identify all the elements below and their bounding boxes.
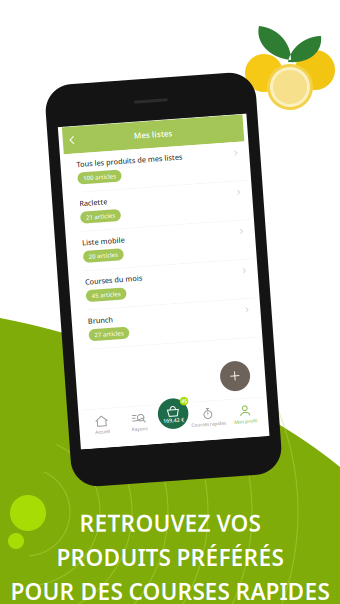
button[interactable]: Nouvelle liste (262, 450, 322, 510)
staticText: Courses du mois (6, 261, 121, 281)
staticText: 20 articles (17, 213, 76, 229)
button[interactable]: Raclette (0, 92, 340, 170)
button[interactable]: Courses du mois (0, 249, 340, 327)
button[interactable]: Brunch (0, 328, 340, 405)
staticText: 27 articles (17, 370, 76, 386)
staticText: Mon profil (284, 566, 330, 578)
staticText: Liste mobile (6, 183, 91, 202)
staticText: Courses rapides (198, 566, 267, 578)
button[interactable]: Mon profil (270, 527, 340, 604)
staticText: RETROUVEZ VOS (79, 508, 260, 538)
button[interactable]: Tous les produits de mes listes (0, 13, 340, 91)
button[interactable]: Courses rapides (195, 527, 270, 604)
staticText: 45 (181, 516, 193, 530)
staticText: PRODUITS PRÉFÉRÉS (56, 542, 283, 572)
staticText: 45 articles (17, 292, 76, 308)
staticText: Raclette (6, 104, 62, 124)
staticText: 169,42 € (142, 552, 184, 567)
staticText: 21 articles (17, 135, 76, 150)
button[interactable]: Accueil (0, 527, 57, 604)
button[interactable]: Rayons (57, 527, 131, 604)
staticText: POUR DES COURSES RAPIDES (10, 576, 329, 604)
button[interactable]: Panier 169,42 euros (129, 512, 197, 580)
button[interactable]: Liste mobile (0, 171, 340, 248)
